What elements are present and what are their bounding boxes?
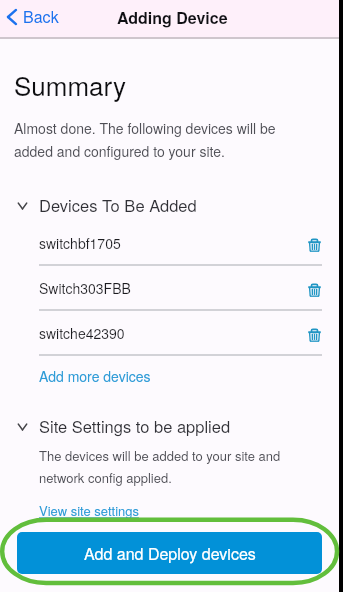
button[interactable]: Delete switche42390 [305, 326, 323, 344]
button[interactable]: Delete Switch303FBB [305, 281, 323, 299]
button[interactable]: Back [2, 3, 64, 34]
button[interactable]: switchbf1705 [0, 221, 339, 264]
button[interactable]: Devices To Be Added [0, 193, 339, 217]
button[interactable]: Switch303FBB [0, 266, 339, 309]
button[interactable]: Delete switchbf1705 [305, 236, 323, 254]
staticText: Switch303FBB [39, 278, 131, 298]
staticText: switche42390 [39, 323, 125, 343]
button[interactable]: switche42390 [0, 311, 339, 354]
staticText: Almost done. The following devices will … [14, 118, 276, 161]
button[interactable]: Add more devices [0, 366, 159, 386]
staticText: Add more devices [39, 366, 151, 386]
staticText: Devices To Be Added [39, 193, 197, 217]
staticText: switchbf1705 [39, 233, 121, 253]
button[interactable]: Add and Deploy devices [17, 532, 322, 574]
staticText: Adding Device [117, 6, 228, 29]
staticText: The devices will be added to your site a… [39, 446, 281, 487]
button[interactable]: View site settings [0, 501, 147, 520]
staticText: Add and Deploy devices [84, 542, 256, 565]
staticText: Site Settings to be applied [39, 414, 231, 438]
staticText: Back [23, 5, 59, 28]
staticText: View site settings [39, 501, 139, 520]
staticText: Summary [14, 66, 126, 103]
button[interactable]: Site Settings to be applied [0, 414, 339, 438]
